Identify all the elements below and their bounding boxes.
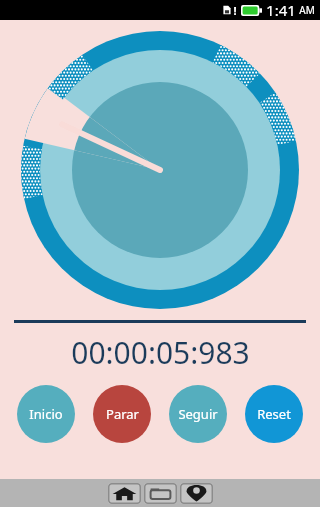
staticText: Inicio xyxy=(29,405,63,423)
button[interactable]: Inicio xyxy=(17,385,75,443)
button[interactable]: Seguir xyxy=(169,385,227,443)
button[interactable]: Home xyxy=(108,483,141,504)
staticText: Reset xyxy=(257,405,291,423)
staticText: AM xyxy=(299,3,315,17)
staticText: 00:00:05:983 xyxy=(71,332,250,373)
staticText: 1:41 xyxy=(266,0,296,20)
staticText: Seguir xyxy=(178,405,218,423)
button[interactable]: Reset xyxy=(245,385,303,443)
staticText: Parar xyxy=(106,405,139,423)
button[interactable]: Parar xyxy=(93,385,151,443)
button[interactable]: Location xyxy=(180,483,213,504)
staticText: ! xyxy=(233,3,237,18)
button[interactable]: Recent apps xyxy=(144,483,177,504)
